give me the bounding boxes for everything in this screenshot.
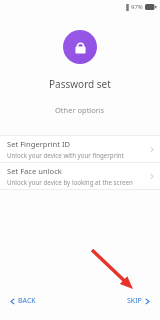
- button[interactable]: BACK: [6, 293, 40, 309]
- button[interactable]: Set Fingerprint ID: [0, 136, 160, 162]
- other: Open: [150, 146, 154, 153]
- staticText: Other options: [55, 105, 105, 115]
- staticText: SKIP: [127, 296, 142, 306]
- staticText: BACK: [18, 296, 36, 306]
- staticText: Password set: [49, 77, 111, 91]
- staticText: 97%: [131, 3, 143, 11]
- button[interactable]: Set Face unlock: [0, 163, 160, 189]
- other: Open: [150, 173, 154, 180]
- staticText: Set Fingerprint ID: [7, 139, 71, 149]
- staticText: Set Face unlock: [7, 166, 62, 176]
- button[interactable]: SKIP: [123, 293, 154, 309]
- staticText: Unlock your device with your fingerprint: [7, 151, 124, 159]
- staticText: Unlock your device by looking at the scr…: [7, 178, 133, 186]
